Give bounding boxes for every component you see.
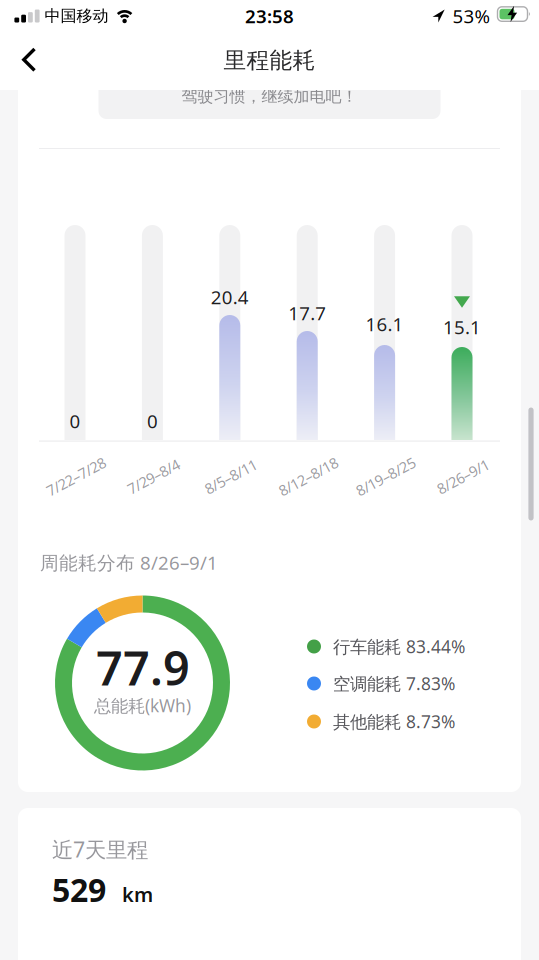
staticText: 驾驶习惯，继续加电吧！: [181, 87, 357, 106]
staticText: 空调能耗 7.83%: [333, 672, 455, 695]
staticText: 20.4: [211, 285, 249, 309]
staticText: 周能耗分布 8/26–9/1: [40, 550, 218, 575]
staticText: 529: [52, 868, 106, 911]
staticText: 77.9: [96, 636, 190, 698]
staticText: 总能耗(kWh): [94, 694, 191, 717]
staticText: 16.1: [366, 312, 404, 336]
staticText: 8/5–8/11: [202, 467, 259, 486]
staticText: 7/22–7/28: [43, 467, 108, 486]
staticText: 53%: [452, 4, 490, 28]
staticText: 行车能耗 83.44%: [333, 635, 465, 658]
staticText: 里程能耗: [223, 47, 315, 74]
staticText: 7/29–8/4: [125, 467, 182, 486]
staticText: 其他能耗 8.73%: [333, 710, 455, 733]
staticText: km: [122, 881, 153, 907]
staticText: 0: [147, 409, 158, 433]
staticText: 8/19–8/25: [353, 467, 418, 486]
staticText: 中国移动: [45, 6, 109, 26]
staticText: 8/12–8/18: [276, 467, 341, 486]
staticText: 17.7: [288, 301, 326, 325]
button[interactable]: [10, 37, 52, 85]
staticText: 0: [69, 409, 80, 433]
staticText: 8/26–9/1: [434, 467, 491, 486]
staticText: 15.1: [443, 315, 481, 339]
staticText: 23:58: [245, 4, 294, 28]
staticText: 近7天里程: [52, 835, 148, 863]
